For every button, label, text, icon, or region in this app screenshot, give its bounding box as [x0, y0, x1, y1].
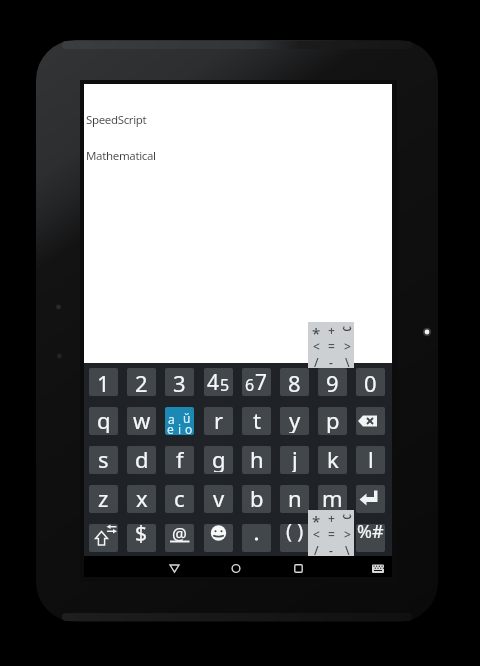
- button[interactable]: 3: [165, 368, 194, 396]
- staticText: 7: [255, 368, 268, 396]
- button[interactable]: x: [127, 485, 156, 513]
- staticText: %#: [357, 524, 384, 544]
- button[interactable]: t: [242, 407, 271, 435]
- staticText: 8: [288, 368, 301, 396]
- button[interactable]: [318, 524, 347, 552]
- button[interactable]: v: [204, 485, 233, 513]
- button[interactable]: [242, 524, 271, 552]
- staticText: d: [135, 446, 149, 472]
- button[interactable]: 4: [204, 368, 233, 396]
- staticText: +: [328, 322, 335, 338]
- button[interactable]: [356, 407, 385, 435]
- button[interactable]: 2: [127, 368, 156, 396]
- staticText: *: [312, 323, 321, 341]
- button[interactable]: s: [89, 446, 118, 474]
- staticText: =: [328, 338, 335, 354]
- staticText: x: [136, 485, 148, 511]
- staticText: \: [345, 542, 350, 558]
- button[interactable]: q: [89, 407, 118, 435]
- button[interactable]: [204, 524, 233, 552]
- button[interactable]: r: [204, 407, 233, 435]
- staticText: +: [328, 510, 335, 526]
- staticText: c: [174, 485, 185, 511]
- button[interactable]: @: [165, 524, 194, 552]
- staticText: 0: [364, 368, 377, 396]
- staticText: 1: [97, 368, 110, 396]
- button[interactable]: SpeedScript: [84, 84, 392, 363]
- staticText: l: [368, 446, 374, 472]
- button[interactable]: j: [280, 446, 309, 474]
- staticText: *: [312, 511, 321, 529]
- button[interactable]: p: [318, 407, 347, 435]
- staticText: m: [322, 485, 343, 511]
- button[interactable]: h: [242, 446, 271, 474]
- button[interactable]: k: [318, 446, 347, 474]
- button[interactable]: 0: [356, 368, 385, 396]
- staticText: f: [176, 446, 184, 472]
- button[interactable]: [356, 485, 385, 513]
- button[interactable]: c: [165, 485, 194, 513]
- button[interactable]: 8: [280, 368, 309, 396]
- button[interactable]: [308, 322, 354, 368]
- staticText: SpeedScript: [86, 112, 147, 128]
- staticText: <: [313, 526, 320, 542]
- staticText: w: [133, 407, 151, 433]
- staticText: ŭ: [183, 410, 191, 426]
- staticText: \: [345, 354, 350, 370]
- button[interactable]: z: [89, 485, 118, 513]
- button[interactable]: 9: [318, 368, 347, 396]
- staticText: -: [329, 542, 333, 558]
- staticText: b: [250, 485, 264, 511]
- staticText: k: [327, 446, 339, 472]
- staticText: -: [329, 354, 333, 370]
- button[interactable]: 6: [242, 368, 271, 396]
- button[interactable]: d: [127, 446, 156, 474]
- button[interactable]: m: [318, 485, 347, 513]
- staticText: $: [135, 524, 148, 547]
- button[interactable]: g: [204, 446, 233, 474]
- staticText: 3: [173, 368, 186, 396]
- staticText: <: [313, 338, 320, 354]
- staticText: v: [213, 485, 225, 511]
- staticText: 2: [135, 368, 148, 396]
- staticText: s: [98, 446, 109, 472]
- button[interactable]: [308, 510, 354, 556]
- staticText: r: [214, 407, 224, 433]
- button[interactable]: %#: [356, 524, 385, 552]
- staticText: e: [167, 421, 174, 435]
- staticText: h: [250, 446, 264, 472]
- button[interactable]: b: [242, 485, 271, 513]
- staticText: Mathematical: [86, 148, 156, 164]
- staticText: t: [253, 407, 261, 433]
- staticText: 6: [245, 374, 255, 396]
- staticText: z: [98, 485, 109, 511]
- staticText: /: [314, 542, 319, 558]
- staticText: n: [288, 485, 302, 511]
- button[interactable]: 1: [89, 368, 118, 396]
- staticText: j: [292, 446, 298, 472]
- button[interactable]: ( ): [280, 524, 309, 552]
- staticText: y: [289, 407, 301, 433]
- staticText: o: [185, 421, 193, 435]
- staticText: p: [326, 407, 340, 433]
- staticText: >: [344, 338, 351, 354]
- staticText: ( ): [286, 524, 304, 544]
- staticText: i: [178, 421, 182, 435]
- button[interactable]: $: [127, 524, 156, 552]
- staticText: =: [328, 526, 335, 542]
- button[interactable]: f: [165, 446, 194, 474]
- staticText: a: [168, 411, 175, 427]
- button[interactable]: [89, 524, 118, 552]
- staticText: q: [97, 407, 111, 433]
- button[interactable]: n: [280, 485, 309, 513]
- button[interactable]: w: [127, 407, 156, 435]
- staticText: >: [344, 526, 351, 542]
- staticText: 5: [220, 374, 230, 396]
- staticText: 4: [207, 368, 220, 396]
- staticText: 9: [326, 368, 339, 396]
- button[interactable]: l: [356, 446, 385, 474]
- staticText: @: [172, 524, 187, 544]
- button[interactable]: a: [165, 407, 194, 435]
- staticText: g: [212, 446, 226, 472]
- button[interactable]: y: [280, 407, 309, 435]
